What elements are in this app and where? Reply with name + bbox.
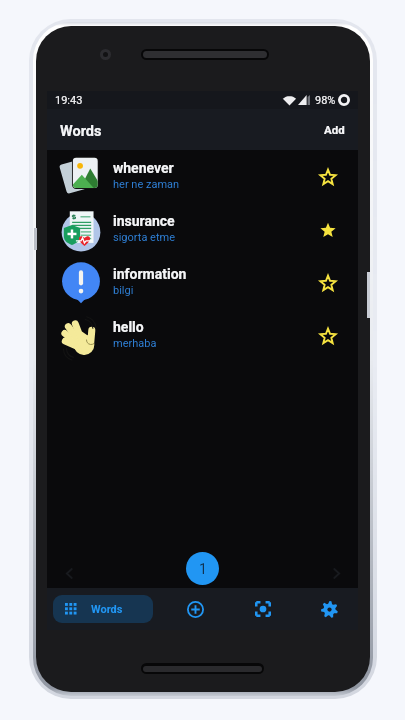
button[interactable]: hello [47, 309, 358, 362]
staticText: Words [60, 123, 102, 140]
button[interactable]: information [47, 256, 358, 309]
staticText: 1 [199, 561, 207, 577]
staticText: information [113, 266, 187, 282]
staticText: insurance [113, 213, 175, 229]
staticText: bilgi [113, 284, 134, 297]
staticText: 19:43 [55, 94, 83, 107]
button[interactable]: insurance [47, 203, 358, 256]
button[interactable]: Scan [246, 592, 280, 626]
button[interactable]: 1 [186, 552, 219, 585]
button[interactable]: Words [53, 595, 153, 623]
staticText: 98% [315, 94, 336, 107]
staticText: merhaba [113, 337, 157, 350]
button[interactable]: Settings [312, 592, 346, 626]
button[interactable]: Favourite [313, 162, 343, 192]
button[interactable]: Favourite [313, 215, 343, 245]
button[interactable]: Favourite [313, 321, 343, 351]
staticText: her ne zaman [113, 178, 180, 191]
staticText: whenever [113, 160, 174, 176]
button[interactable]: Favourite [313, 268, 343, 298]
staticText: Add [324, 123, 345, 136]
staticText: Words [91, 603, 123, 616]
button[interactable]: Next page [326, 563, 346, 583]
staticText: sigorta etme [113, 231, 176, 244]
button[interactable]: whenever [47, 150, 358, 203]
button[interactable]: Previous page [59, 563, 79, 583]
button[interactable]: Add word [178, 592, 212, 626]
button[interactable]: Add [312, 117, 358, 142]
staticText: hello [113, 319, 144, 335]
